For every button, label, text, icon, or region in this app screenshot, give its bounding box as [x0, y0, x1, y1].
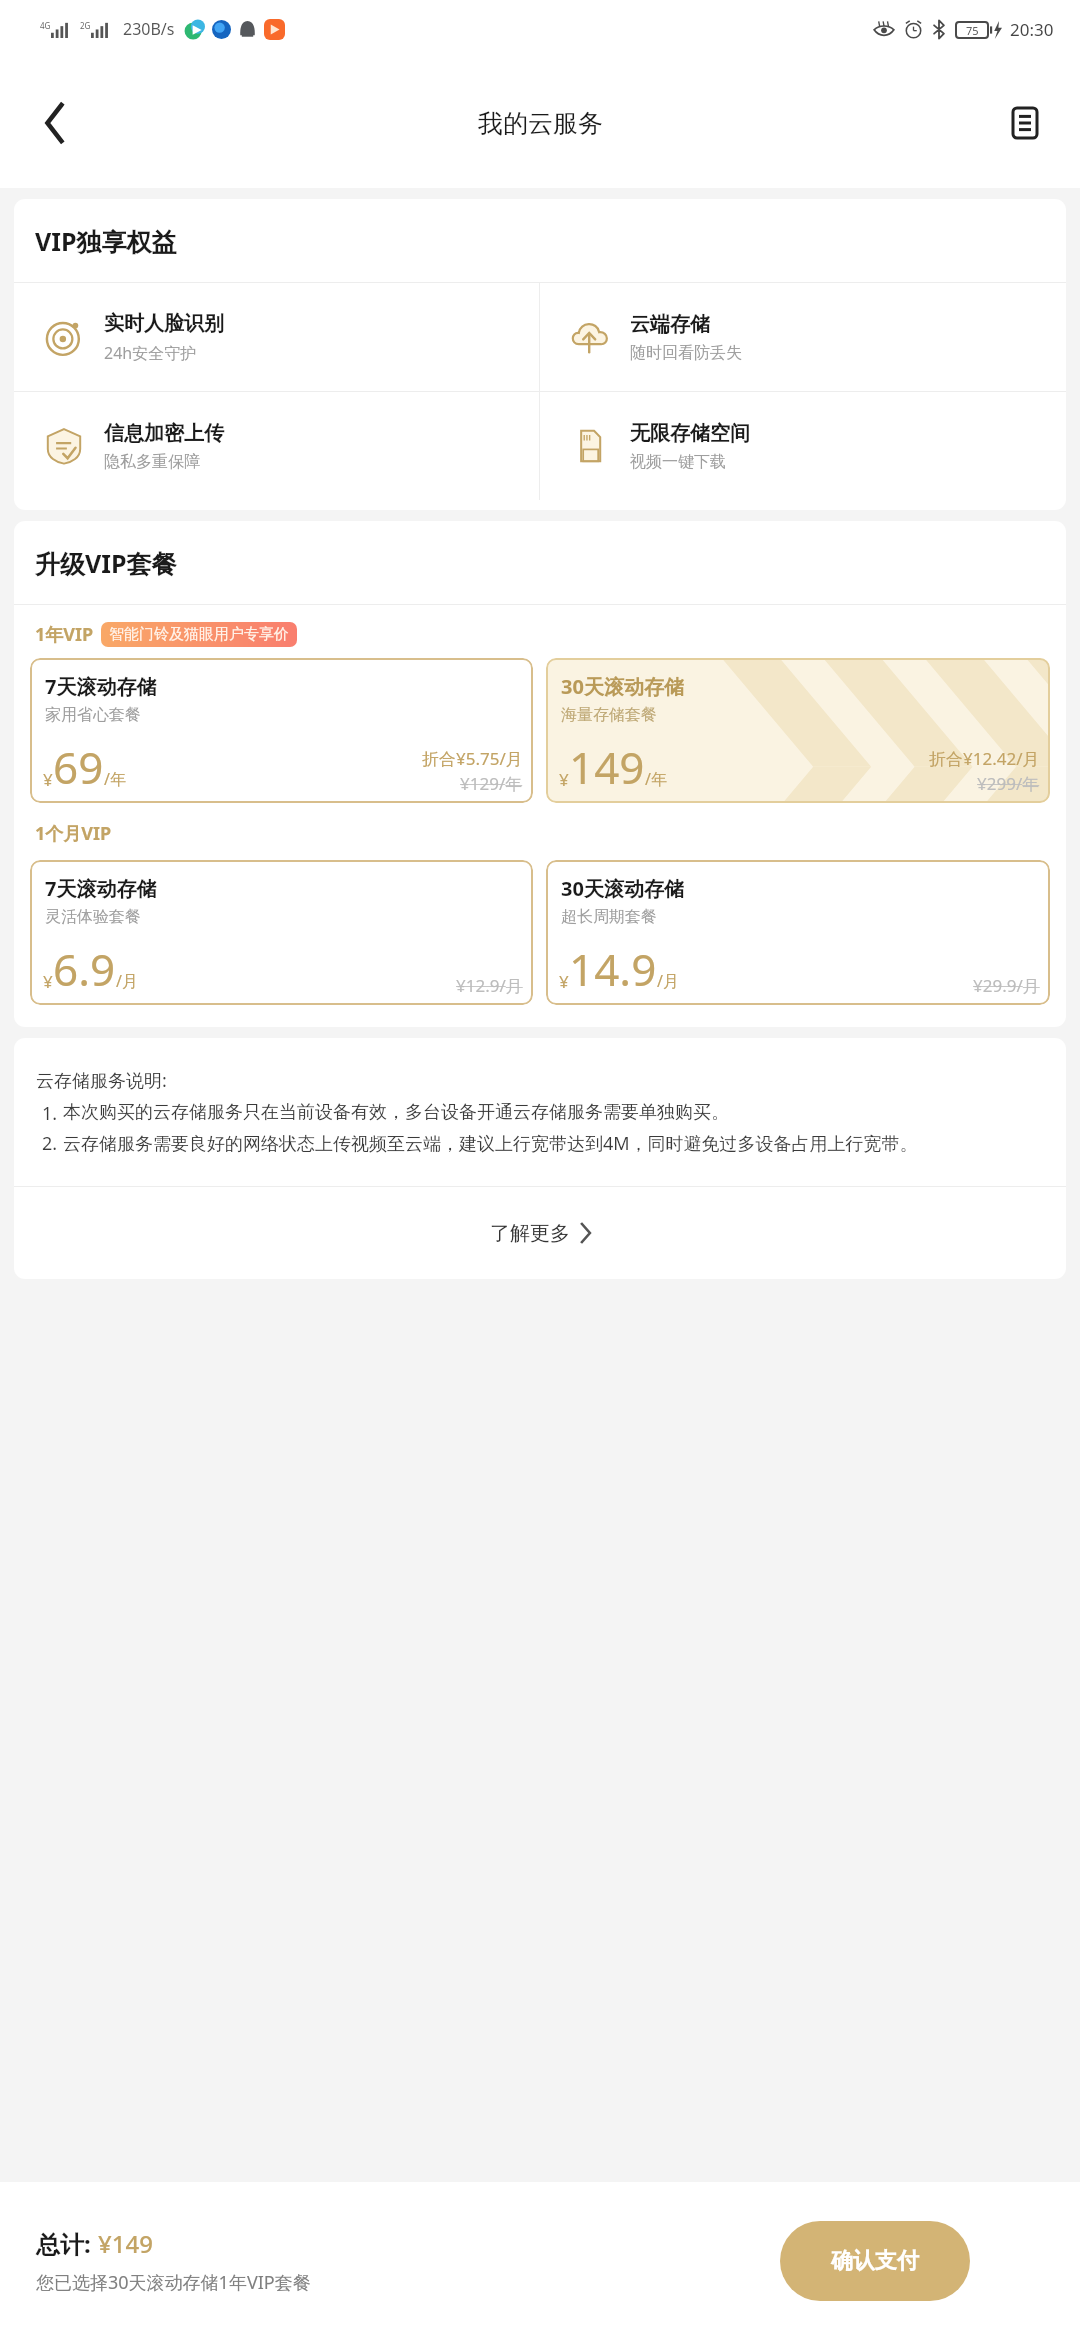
staticText: ¥: [43, 768, 53, 791]
staticText: 230B/s: [123, 18, 175, 40]
staticText: 149: [569, 737, 645, 797]
staticText: 30天滚动存储: [561, 673, 684, 700]
staticText: 信息加密上传: [104, 421, 224, 446]
staticText: ¥299/年: [977, 772, 1040, 795]
staticText: 我的云服务: [478, 108, 603, 139]
staticText: 7天滚动存储: [45, 673, 157, 700]
button[interactable]: 实时人脸识别: [14, 283, 539, 391]
staticText: 24h安全守护: [104, 342, 197, 364]
button[interactable]: Back: [22, 90, 88, 156]
button[interactable]: Menu: [994, 92, 1056, 154]
button[interactable]: 信息加密上传: [14, 392, 539, 500]
staticText: 您已选择30天滚动存储1年VIP套餐: [36, 2270, 311, 2295]
staticText: /年: [104, 768, 126, 790]
button[interactable]: 7天滚动存储: [30, 658, 533, 803]
staticText: /月: [657, 970, 679, 992]
button[interactable]: 无限存储空间: [540, 392, 1066, 500]
staticText: 了解更多: [490, 1221, 570, 1246]
staticText: 14.9: [569, 939, 657, 999]
staticText: 2G: [80, 20, 91, 31]
staticText: 升级VIP套餐: [35, 546, 177, 580]
staticText: 总计:: [36, 2227, 91, 2260]
button[interactable]: 7天滚动存储: [30, 860, 533, 1005]
staticText: ¥: [43, 970, 53, 993]
staticText: 无限存储空间: [630, 421, 750, 446]
staticText: ¥29.9/月: [973, 974, 1040, 997]
staticText: VIP独享权益: [35, 224, 177, 258]
staticText: 灵活体验套餐: [45, 907, 141, 927]
staticText: 云存储服务需要良好的网络状态上传视频至云端，建议上行宽带达到4M，同时避免过多设…: [63, 1131, 918, 1156]
staticText: ¥129/年: [460, 772, 523, 795]
staticText: /年: [645, 768, 667, 790]
staticText: ¥149: [98, 2227, 153, 2260]
staticText: 折合¥5.75/月: [422, 747, 523, 770]
staticText: ¥: [559, 768, 569, 791]
staticText: 1个月VIP: [35, 821, 112, 846]
staticText: 本次购买的云存储服务只在当前设备有效，多台设备开通云存储服务需要单独购买。: [63, 1101, 729, 1124]
staticText: 20:30: [1010, 18, 1054, 41]
button[interactable]: 了解更多: [14, 1187, 1066, 1279]
staticText: 折合¥12.42/月: [929, 747, 1040, 770]
staticText: 2.: [42, 1131, 58, 1156]
staticText: 智能门铃及猫眼用户专享价: [109, 625, 289, 644]
staticText: 海量存储套餐: [561, 705, 657, 725]
button[interactable]: 30天滚动存储: [546, 658, 1050, 803]
staticText: 云存储服务说明:: [36, 1068, 167, 1093]
staticText: 1年VIP: [35, 622, 94, 647]
staticText: 确认支付: [831, 2247, 919, 2275]
button[interactable]: 云端存储: [540, 283, 1066, 391]
staticText: 30天滚动存储: [561, 875, 684, 902]
button[interactable]: 确认支付: [780, 2221, 970, 2301]
staticText: 4G: [40, 20, 51, 31]
staticText: 1.: [42, 1101, 58, 1126]
staticText: 视频一键下载: [630, 452, 726, 472]
staticText: /月: [116, 970, 138, 992]
staticText: 超长周期套餐: [561, 907, 657, 927]
button[interactable]: 30天滚动存储: [546, 860, 1050, 1005]
staticText: 隐私多重保障: [104, 452, 200, 472]
staticText: 随时回看防丢失: [630, 343, 742, 363]
staticText: 75: [966, 23, 979, 38]
staticText: 69: [53, 737, 104, 797]
staticText: 家用省心套餐: [45, 705, 141, 725]
staticText: ¥12.9/月: [456, 974, 523, 997]
staticText: 云端存储: [630, 312, 710, 337]
staticText: ¥: [559, 970, 569, 993]
staticText: 7天滚动存储: [45, 875, 157, 902]
staticText: 实时人脸识别: [104, 311, 224, 336]
staticText: 6.9: [53, 939, 116, 999]
